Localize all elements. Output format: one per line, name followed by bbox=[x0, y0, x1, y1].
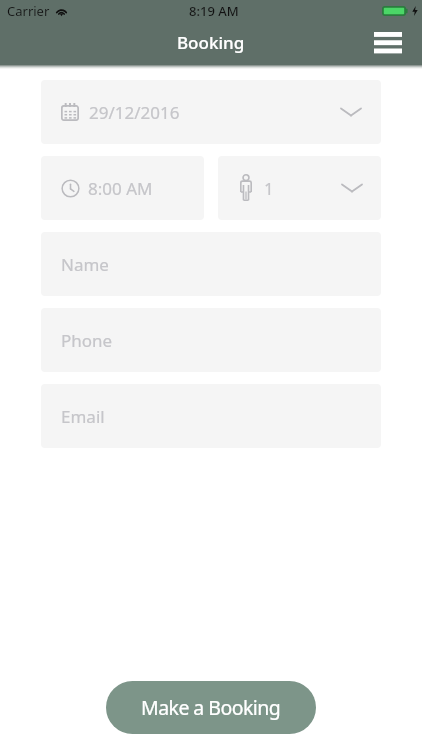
staticText: 8:00 AM bbox=[88, 177, 153, 200]
button[interactable]: 1 bbox=[218, 156, 381, 220]
staticText: Name bbox=[61, 253, 109, 276]
staticText: Booking bbox=[177, 31, 245, 54]
button[interactable]: Name bbox=[41, 232, 381, 296]
staticText: 1 bbox=[264, 177, 274, 200]
button[interactable]: 8:00 AM bbox=[41, 156, 204, 220]
button[interactable]: Phone bbox=[41, 308, 381, 372]
staticText: 8:19 AM bbox=[189, 2, 239, 20]
staticText: Phone bbox=[61, 329, 113, 352]
button[interactable]: 29/12/2016 bbox=[41, 80, 381, 144]
staticText: 29/12/2016 bbox=[89, 101, 180, 124]
staticText: Carrier bbox=[7, 2, 50, 20]
staticText: Make a Booking bbox=[141, 694, 281, 721]
button[interactable]: Make a Booking bbox=[106, 681, 316, 734]
button[interactable]: Email bbox=[41, 384, 381, 448]
button[interactable]: Menu bbox=[368, 25, 408, 59]
staticText: Email bbox=[61, 405, 105, 428]
